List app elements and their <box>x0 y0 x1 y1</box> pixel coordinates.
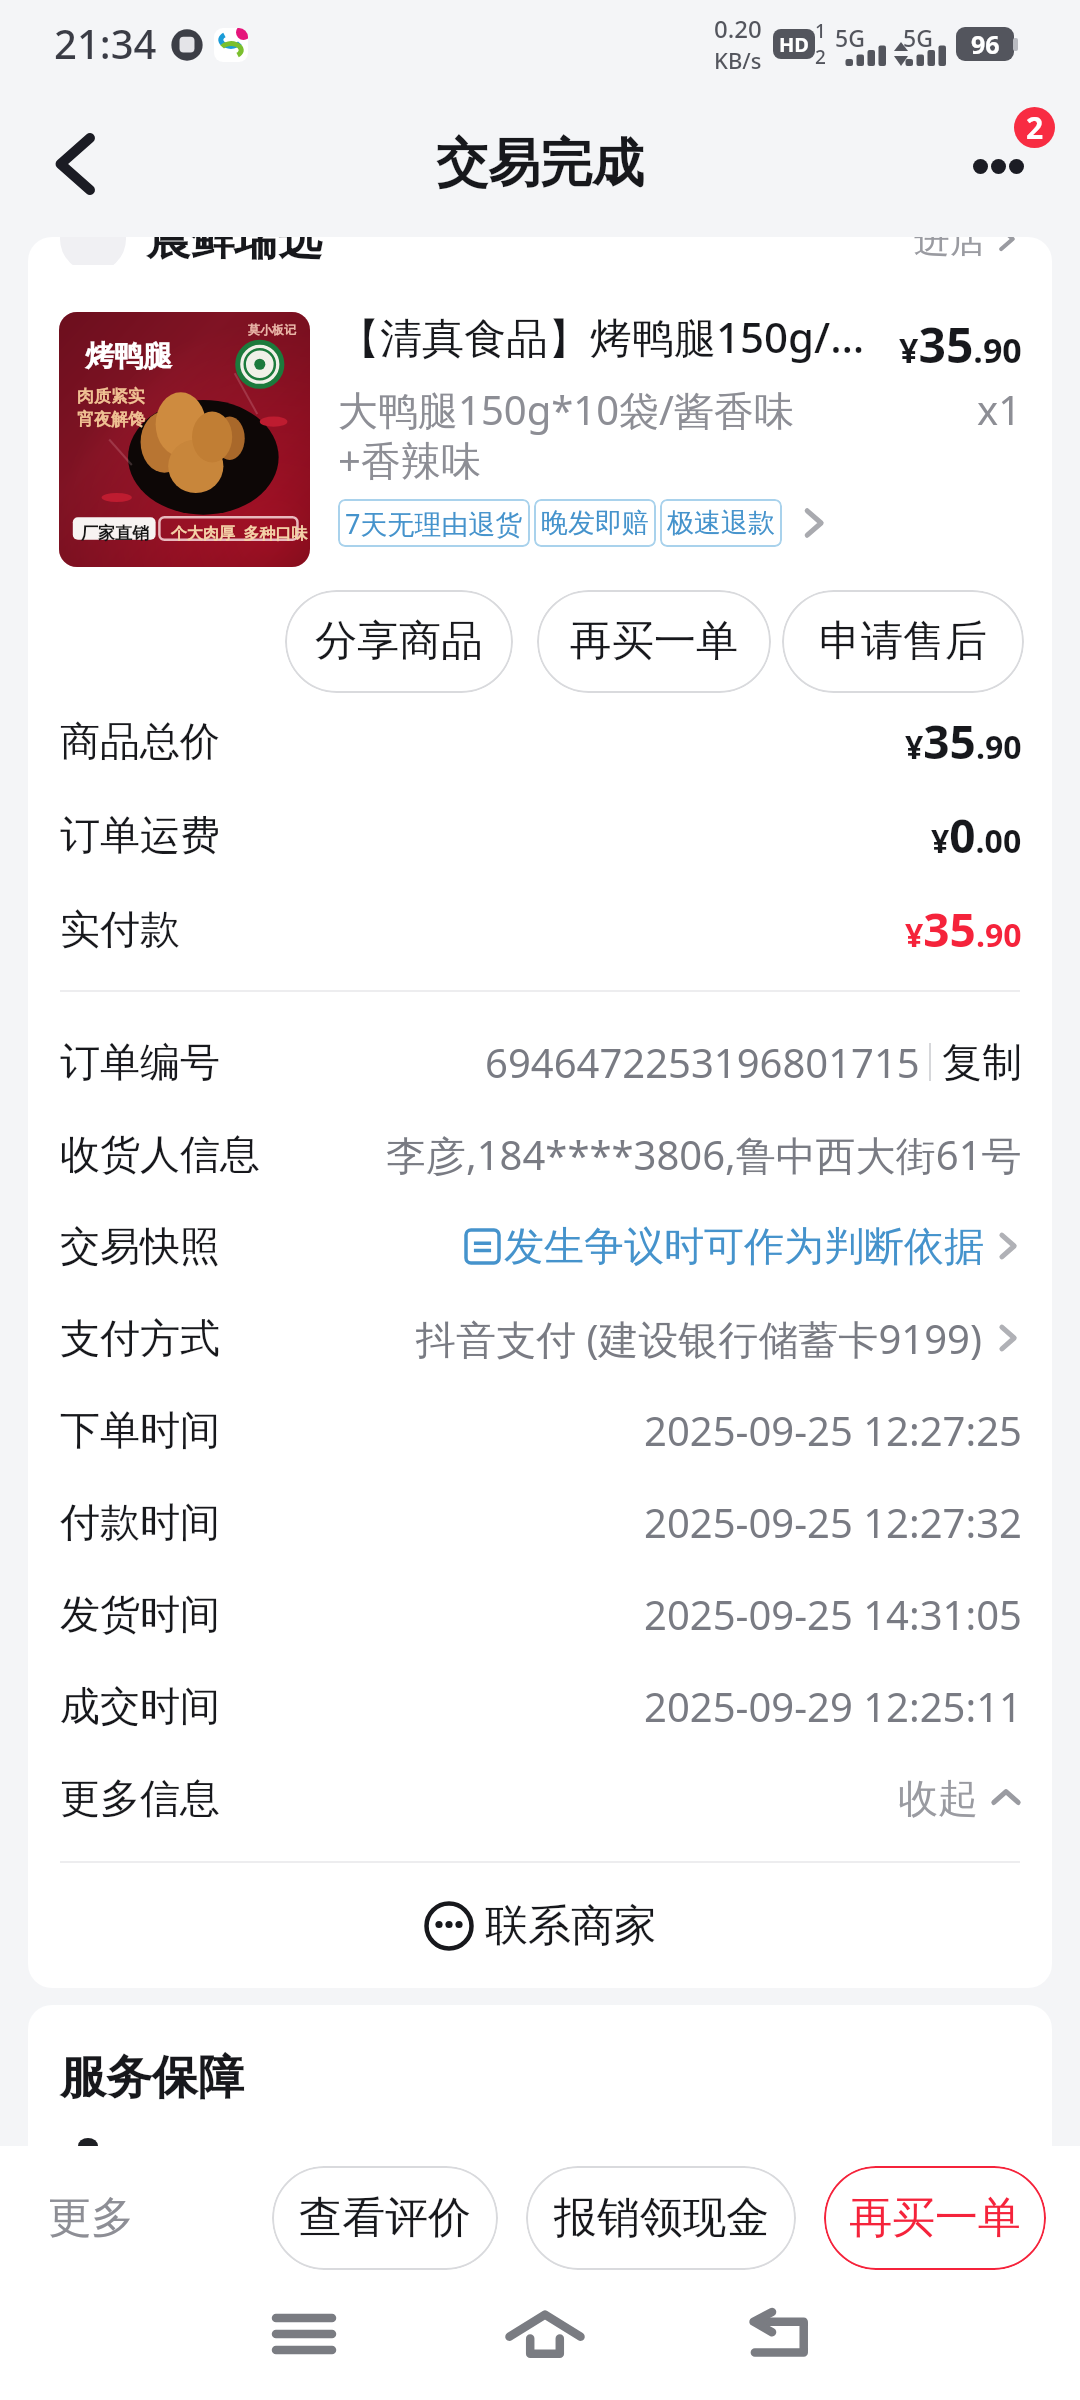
button[interactable]: 下单时间 <box>28 1384 1052 1476</box>
button[interactable]: 复制 <box>942 1037 1022 1087</box>
staticText: 2025-09-29 12:25:11 <box>644 1679 1022 1733</box>
staticText: 2 <box>815 44 826 70</box>
staticText: 5G <box>903 22 933 53</box>
staticText: 极速退款 <box>667 506 775 540</box>
staticText: 查看评价 <box>299 2191 471 2245</box>
button[interactable]: 分享商品 <box>285 590 513 693</box>
staticText: 报销领现金 <box>554 2191 769 2245</box>
button[interactable]: 主页 <box>485 2279 605 2389</box>
staticText: 下单时间 <box>60 1405 220 1455</box>
staticText: 进店 <box>914 237 986 262</box>
staticText: 更多信息 <box>60 1773 220 1823</box>
button[interactable]: 交易快照 <box>28 1200 1052 1292</box>
staticText: 肉质紧实 宵夜解馋 <box>77 386 145 430</box>
button[interactable]: 付款时间 <box>28 1476 1052 1568</box>
staticText: 再买一单 <box>849 2191 1021 2245</box>
button[interactable]: 更多信息 <box>28 1752 1052 1844</box>
staticText: 发货时间 <box>60 1589 220 1639</box>
staticText: 复制 <box>942 1037 1022 1087</box>
staticText: HD <box>779 31 809 58</box>
staticText: 【清真食品】烤鸭腿150g/… <box>338 308 893 365</box>
staticText: 申请售后 <box>819 615 987 668</box>
staticText: 分享商品 <box>315 615 483 668</box>
staticText: 厂家直销 <box>81 523 149 544</box>
staticText: 交易快照 <box>60 1221 220 1271</box>
button[interactable]: 报销领现金 <box>526 2166 796 2270</box>
staticText: 1 <box>815 18 826 44</box>
staticText: 96 <box>971 27 1000 61</box>
staticText: ¥0.00 <box>931 804 1022 867</box>
staticText: 再买一单 <box>570 615 738 668</box>
button[interactable]: 返回 <box>716 2279 836 2389</box>
staticText: 订单运费 <box>60 810 220 860</box>
staticText: KB/s <box>714 45 762 75</box>
staticText: 交易完成 <box>436 131 644 197</box>
staticText: 李彦,184****3806,鲁中西大街61号 <box>386 1127 1022 1182</box>
button[interactable]: 更多选项 <box>956 116 1052 212</box>
staticText: x1 <box>977 382 1022 436</box>
staticText: ¥35.90 <box>905 898 1022 961</box>
staticText: 2 <box>1026 107 1044 148</box>
button[interactable]: 烤鸭腿 <box>59 312 1022 567</box>
staticText: 晚发即赔 <box>541 506 649 540</box>
button[interactable]: 最近任务 <box>244 2279 364 2389</box>
staticText: 支付方式 <box>60 1313 220 1363</box>
staticText: 烤鸭腿 <box>85 338 172 375</box>
button[interactable]: 支付方式 <box>28 1292 1052 1384</box>
staticText: 抖音支付 (建设银行储蓄卡9199) <box>416 1311 982 1366</box>
button[interactable]: 返回 <box>28 118 120 210</box>
staticText: ¥35.90 <box>905 710 1022 773</box>
staticText: 商品总价 <box>60 716 220 766</box>
button[interactable]: 晨鲜瑞选 <box>28 237 1052 265</box>
staticText: 个大肉厚 多种口味 <box>171 522 308 544</box>
button[interactable]: 再买一单 <box>537 590 771 693</box>
staticText: 更多 <box>48 2191 134 2245</box>
staticText: 2025-09-25 12:27:32 <box>644 1495 1022 1549</box>
button[interactable]: 更多 <box>40 2181 142 2255</box>
staticText: 联系商家 <box>485 1899 657 1953</box>
staticText: 实付款 <box>60 904 180 954</box>
button[interactable]: 发货时间 <box>28 1568 1052 1660</box>
staticText: 成交时间 <box>60 1681 220 1731</box>
staticText: 付款时间 <box>60 1497 220 1547</box>
staticText: 大鸭腿150g*10袋/酱香味+香辣味 <box>338 382 808 487</box>
staticText: 0.20 <box>714 12 762 45</box>
staticText: 服务保障 <box>60 2049 244 2107</box>
staticText: 6946472253196801715 <box>485 1035 920 1089</box>
staticText: 2025-09-25 14:31:05 <box>644 1587 1022 1641</box>
button[interactable]: 收货人信息 <box>28 1108 1052 1200</box>
staticText: 5G <box>835 22 865 53</box>
staticText: 收起 <box>898 1773 978 1823</box>
button[interactable]: 再买一单 <box>824 2166 1046 2270</box>
staticText: 2025-09-25 12:27:25 <box>644 1403 1022 1457</box>
button[interactable]: 查看评价 <box>272 2166 498 2270</box>
button[interactable]: 联系商家 <box>28 1863 1052 1988</box>
staticText: 7天无理由退货 <box>345 505 523 542</box>
button[interactable]: 申请售后 <box>782 590 1024 693</box>
staticText: 订单编号 <box>60 1037 220 1087</box>
staticText: 发生争议时可作为判断依据 <box>504 1221 984 1271</box>
staticText: 莫小板记 <box>248 322 296 337</box>
staticText: 21:34 <box>54 16 157 70</box>
button[interactable]: 服务保障 <box>28 2005 1052 2146</box>
staticText: 收货人信息 <box>60 1129 260 1179</box>
button[interactable]: 成交时间 <box>28 1660 1052 1752</box>
staticText: ¥35.90 <box>899 312 1022 377</box>
button[interactable]: 订单编号 <box>28 1016 1052 1108</box>
staticText: 晨鲜瑞选 <box>146 237 322 265</box>
